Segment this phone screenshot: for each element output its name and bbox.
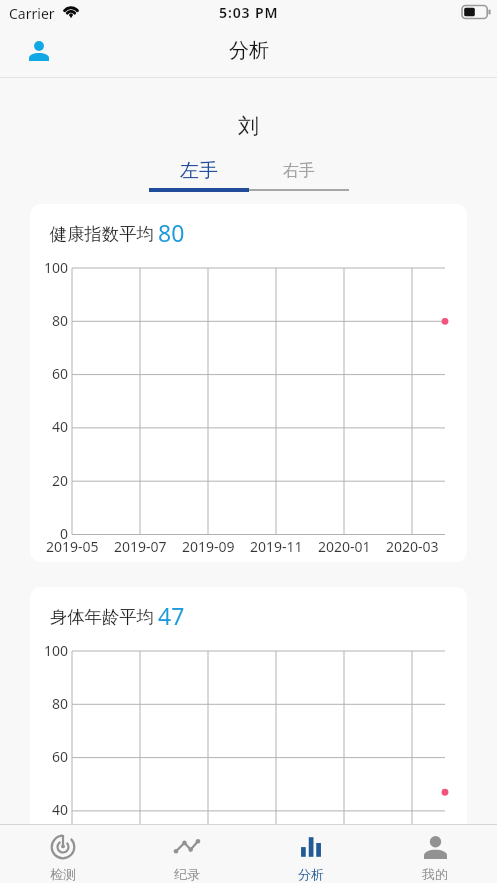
- staticText: 0: [59, 524, 68, 540]
- staticText: 2020-01: [318, 537, 371, 553]
- button[interactable]: Profile: [19, 31, 59, 71]
- staticText: 检测: [50, 866, 76, 882]
- staticText: 2019-11: [250, 537, 303, 553]
- staticText: 纪录: [174, 866, 200, 882]
- staticText: 身体年龄平均: [50, 606, 154, 628]
- staticText: 60: [51, 747, 68, 763]
- staticText: 60: [51, 364, 68, 380]
- button[interactable]: 右手: [249, 158, 349, 192]
- button[interactable]: 纪录: [125, 825, 249, 883]
- staticText: 我的: [422, 866, 448, 882]
- staticText: 40: [51, 417, 68, 433]
- button[interactable]: 左手: [149, 158, 249, 192]
- button[interactable]: 检测: [0, 825, 125, 883]
- staticText: 2019-09: [182, 537, 235, 553]
- button[interactable]: 健康指数平均: [30, 204, 467, 562]
- staticText: 80: [51, 694, 68, 710]
- button[interactable]: 身体年龄平均: [30, 587, 467, 883]
- staticText: 40: [51, 800, 68, 816]
- staticText: 2019-05: [46, 537, 99, 553]
- staticText: 左手: [180, 159, 218, 183]
- staticText: 刘: [238, 113, 259, 139]
- staticText: 80: [158, 217, 185, 245]
- staticText: 分析: [229, 38, 269, 63]
- staticText: 5:03 PM: [219, 3, 279, 22]
- staticText: 2020-03: [386, 537, 439, 553]
- staticText: 20: [51, 471, 68, 487]
- staticText: 2019-07: [114, 537, 167, 553]
- button[interactable]: 我的: [373, 825, 497, 883]
- staticText: 47: [158, 600, 185, 628]
- button[interactable]: 分析: [249, 825, 373, 883]
- staticText: 80: [51, 311, 68, 327]
- staticText: 20: [51, 854, 68, 870]
- staticText: 健康指数平均: [50, 223, 154, 245]
- staticText: 分析: [298, 866, 324, 882]
- staticText: 100: [43, 258, 68, 274]
- staticText: 右手: [283, 161, 315, 181]
- staticText: 100: [43, 641, 68, 657]
- staticText: Carrier: [9, 4, 55, 23]
